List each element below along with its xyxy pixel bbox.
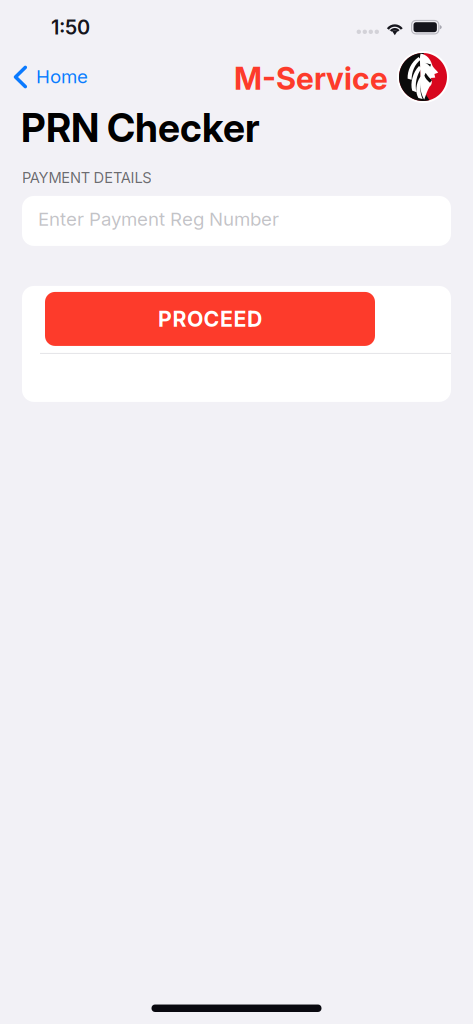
button[interactable]: PROCEED [45,292,375,346]
staticText: Home [36,65,88,87]
button[interactable]: Home [0,54,190,100]
staticText: PROCEED [158,306,262,331]
staticText: Enter Payment Reg Number [38,208,279,230]
staticText: M-Service [234,60,388,97]
staticText: 1:50 [51,15,90,39]
staticText: PAYMENT DETAILS [22,169,151,186]
staticText: PRN Checker [21,105,260,151]
